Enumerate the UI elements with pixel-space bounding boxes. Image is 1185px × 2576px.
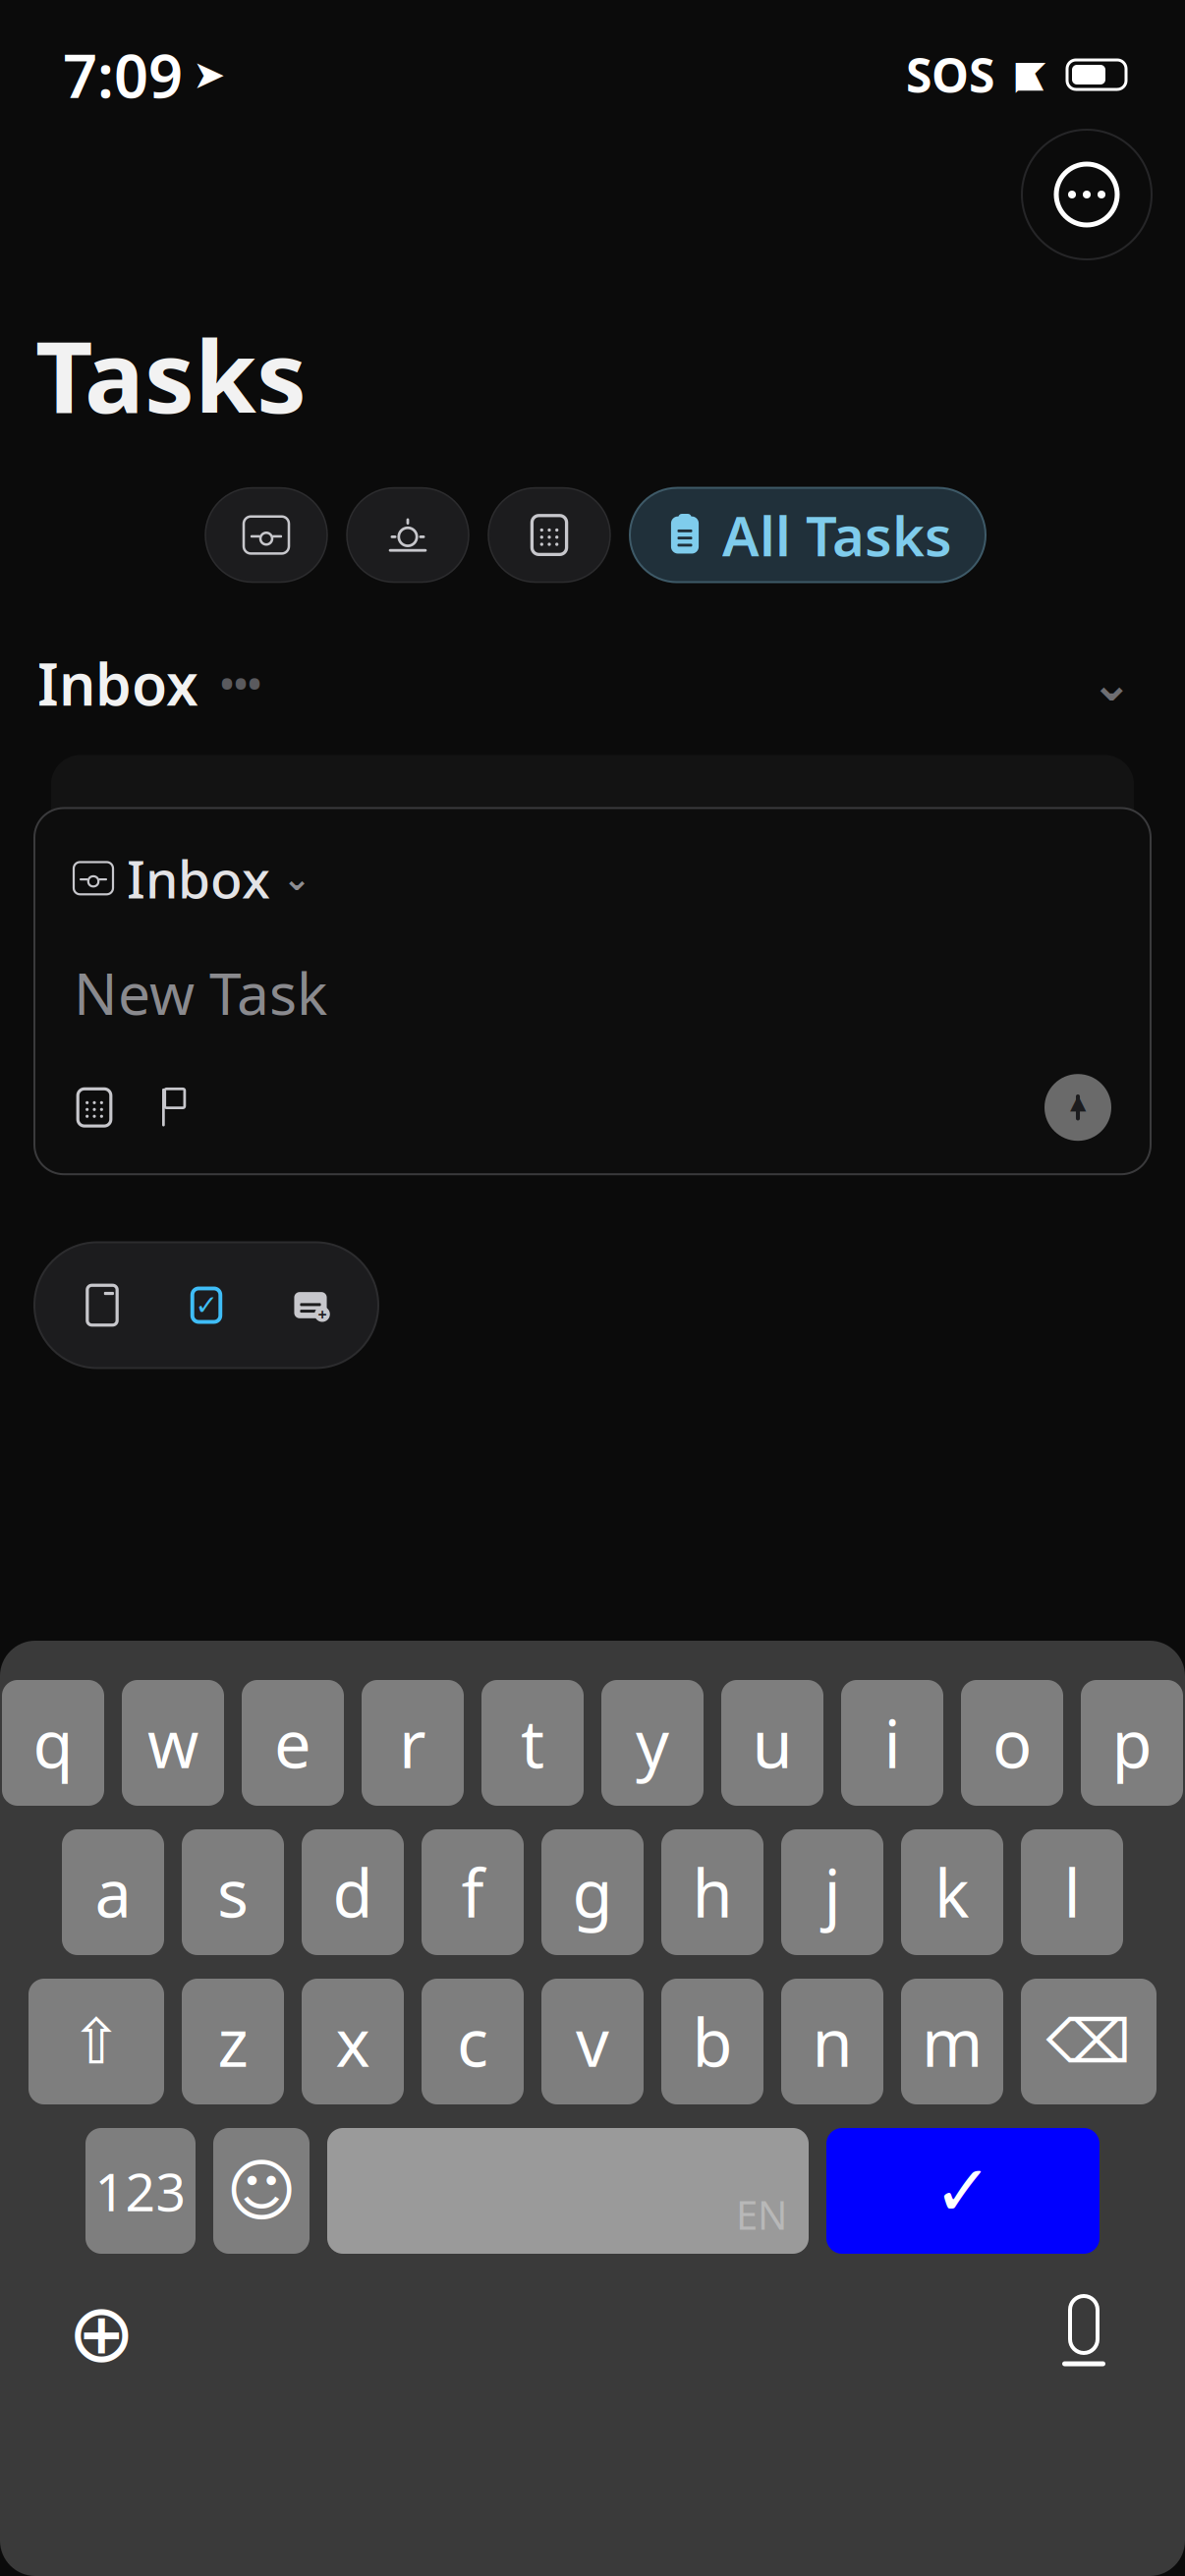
button[interactable]: Collapse section [1081, 653, 1142, 714]
staticText: ◤ [1016, 52, 1046, 97]
button[interactable]: d [302, 1829, 404, 1955]
staticText: Tasks [35, 308, 307, 441]
staticText: ⌫ [1046, 2007, 1131, 2076]
staticText: ➤ [193, 52, 226, 97]
staticText: ▲ [1070, 1090, 1086, 1114]
button[interactable]: g [541, 1829, 644, 1955]
staticText: s [217, 1849, 249, 1936]
button[interactable]: k [901, 1829, 1003, 1955]
button[interactable]: Set priority [162, 1087, 203, 1128]
staticText: u [752, 1699, 792, 1786]
staticText: EN [736, 2188, 787, 2240]
button[interactable]: More options [1022, 130, 1152, 259]
button[interactable]: Emoji [213, 2128, 310, 2254]
button[interactable]: Set date [74, 1087, 115, 1128]
button[interactable]: t [481, 1680, 584, 1806]
button[interactable]: Delete [1021, 1979, 1157, 2104]
button[interactable]: e [242, 1680, 344, 1806]
button[interactable]: New list item [258, 1258, 363, 1352]
staticText: g [572, 1849, 613, 1936]
button[interactable]: Shift [28, 1979, 164, 2104]
button[interactable]: All Tasks [630, 488, 986, 582]
staticText: New Task [74, 954, 327, 1031]
staticText: + [318, 1304, 327, 1325]
staticText: 7:09 [63, 35, 183, 115]
staticText: m [922, 1998, 983, 2085]
staticText: r [399, 1699, 426, 1786]
staticText: v [576, 1998, 609, 2085]
button[interactable]: Inbox [205, 488, 327, 582]
staticText: e [274, 1699, 311, 1786]
staticText: ✓ [933, 2151, 992, 2231]
button[interactable]: Done [826, 2128, 1100, 2254]
button[interactable]: c [422, 1979, 524, 2104]
staticText: o [992, 1699, 1032, 1786]
button[interactable]: Add task [1044, 1074, 1111, 1141]
button[interactable]: o [961, 1680, 1063, 1806]
staticText: p [1112, 1699, 1152, 1786]
staticText: SOS [906, 43, 994, 106]
button[interactable]: f [422, 1829, 524, 1955]
button[interactable]: Task [154, 1258, 258, 1352]
staticText: i [884, 1699, 901, 1786]
staticText: y [636, 1699, 669, 1786]
button[interactable]: u [721, 1680, 823, 1806]
button[interactable]: Scheduled [488, 488, 610, 582]
button[interactable]: v [541, 1979, 644, 2104]
button[interactable]: l [1021, 1829, 1123, 1955]
staticText: z [218, 1998, 248, 2085]
button[interactable]: 123 [85, 2128, 196, 2254]
button[interactable]: p [1081, 1680, 1183, 1806]
button[interactable]: Note [50, 1258, 154, 1352]
staticText: ⌄ [1091, 655, 1132, 712]
staticText: 123 [95, 2156, 186, 2226]
button[interactable]: x [302, 1979, 404, 2104]
button[interactable]: Inbox [74, 843, 1111, 913]
button[interactable]: m [901, 1979, 1003, 2104]
button[interactable]: Space [327, 2128, 809, 2254]
button[interactable]: y [601, 1680, 704, 1806]
button[interactable]: n [781, 1979, 883, 2104]
button[interactable]: a [62, 1829, 164, 1955]
button[interactable]: Today [347, 488, 469, 582]
button[interactable]: Dictate [1040, 2289, 1128, 2378]
staticText: ☺ [226, 2152, 297, 2230]
staticText: w [147, 1699, 198, 1786]
staticText: d [333, 1849, 373, 1936]
staticText: ⇧ [70, 2006, 123, 2077]
button[interactable]: w [122, 1680, 224, 1806]
button[interactable]: h [661, 1829, 763, 1955]
staticText: Inbox [37, 645, 198, 722]
staticText: b [692, 1998, 733, 2085]
button[interactable]: Next keyboard [57, 2289, 145, 2378]
staticText: ⌄ [282, 859, 311, 897]
button[interactable]: s [182, 1829, 284, 1955]
staticText: h [692, 1849, 733, 1936]
button[interactable]: j [781, 1829, 883, 1955]
staticText: k [934, 1849, 970, 1936]
staticText: j [824, 1849, 841, 1936]
button[interactable]: i [841, 1680, 943, 1806]
staticText: l [1064, 1849, 1080, 1936]
staticText: All Tasks [722, 498, 952, 572]
button[interactable]: z [182, 1979, 284, 2104]
staticText: a [95, 1849, 131, 1936]
staticText: ✓ [195, 1290, 218, 1321]
staticText: c [457, 1998, 488, 2085]
staticText: f [461, 1849, 484, 1936]
staticText: n [812, 1998, 852, 2085]
staticText: Inbox [127, 843, 270, 913]
staticText: x [336, 1998, 370, 2085]
button[interactable]: q [2, 1680, 104, 1806]
staticText: t [521, 1699, 544, 1786]
staticText: q [33, 1699, 73, 1786]
button[interactable]: b [661, 1979, 763, 2104]
staticText: ▲ [1017, 55, 1044, 94]
staticText: ⊕ [67, 2287, 135, 2379]
button[interactable]: r [362, 1680, 464, 1806]
button[interactable]: List options [198, 645, 283, 721]
staticText: ••• [220, 659, 261, 708]
